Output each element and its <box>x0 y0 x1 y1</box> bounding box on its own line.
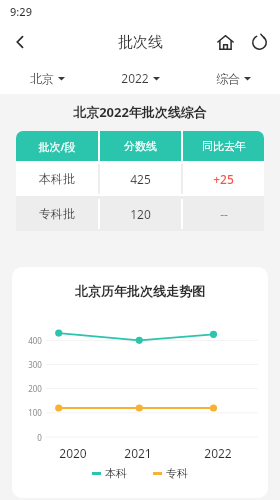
staticText: 425 <box>130 171 151 187</box>
staticText: 专科 <box>166 466 188 480</box>
staticText: 批次/段 <box>38 139 76 154</box>
staticText: 400 <box>28 335 42 346</box>
staticText: 北京历年批次线走势图 <box>75 283 205 299</box>
staticText: 专科批 <box>39 206 75 221</box>
staticText: 综合 <box>216 71 240 86</box>
button[interactable]: 综合 <box>187 62 280 94</box>
staticText: 分数线 <box>124 139 157 153</box>
staticText: +25 <box>213 171 234 187</box>
button[interactable]: 本科 <box>90 464 129 482</box>
staticText: 同比去年 <box>202 139 246 153</box>
staticText: 2020 <box>59 445 87 461</box>
staticText: 北京 <box>30 71 54 86</box>
staticText: 9:29 <box>10 4 32 19</box>
staticText: 批次线 <box>118 33 163 52</box>
staticText: 本科批 <box>39 171 75 186</box>
staticText: 0 <box>37 432 42 443</box>
staticText: 100 <box>28 407 42 418</box>
staticText: 200 <box>28 383 42 394</box>
staticText: 本科 <box>105 466 127 480</box>
staticText: 2022 <box>204 445 232 461</box>
button[interactable]: Home <box>208 25 242 59</box>
button[interactable]: 专科 <box>151 464 190 482</box>
button[interactable]: Refresh <box>242 25 276 59</box>
staticText: -- <box>220 206 228 222</box>
staticText: 2021 <box>124 445 152 461</box>
button[interactable]: 北京 <box>0 62 94 94</box>
staticText: 北京2022年批次线综合 <box>73 103 207 121</box>
staticText: 2022 <box>121 70 149 86</box>
staticText: 120 <box>130 206 151 222</box>
staticText: 300 <box>28 359 42 370</box>
button[interactable]: 2022 <box>94 62 187 94</box>
button[interactable]: Back <box>0 22 40 62</box>
